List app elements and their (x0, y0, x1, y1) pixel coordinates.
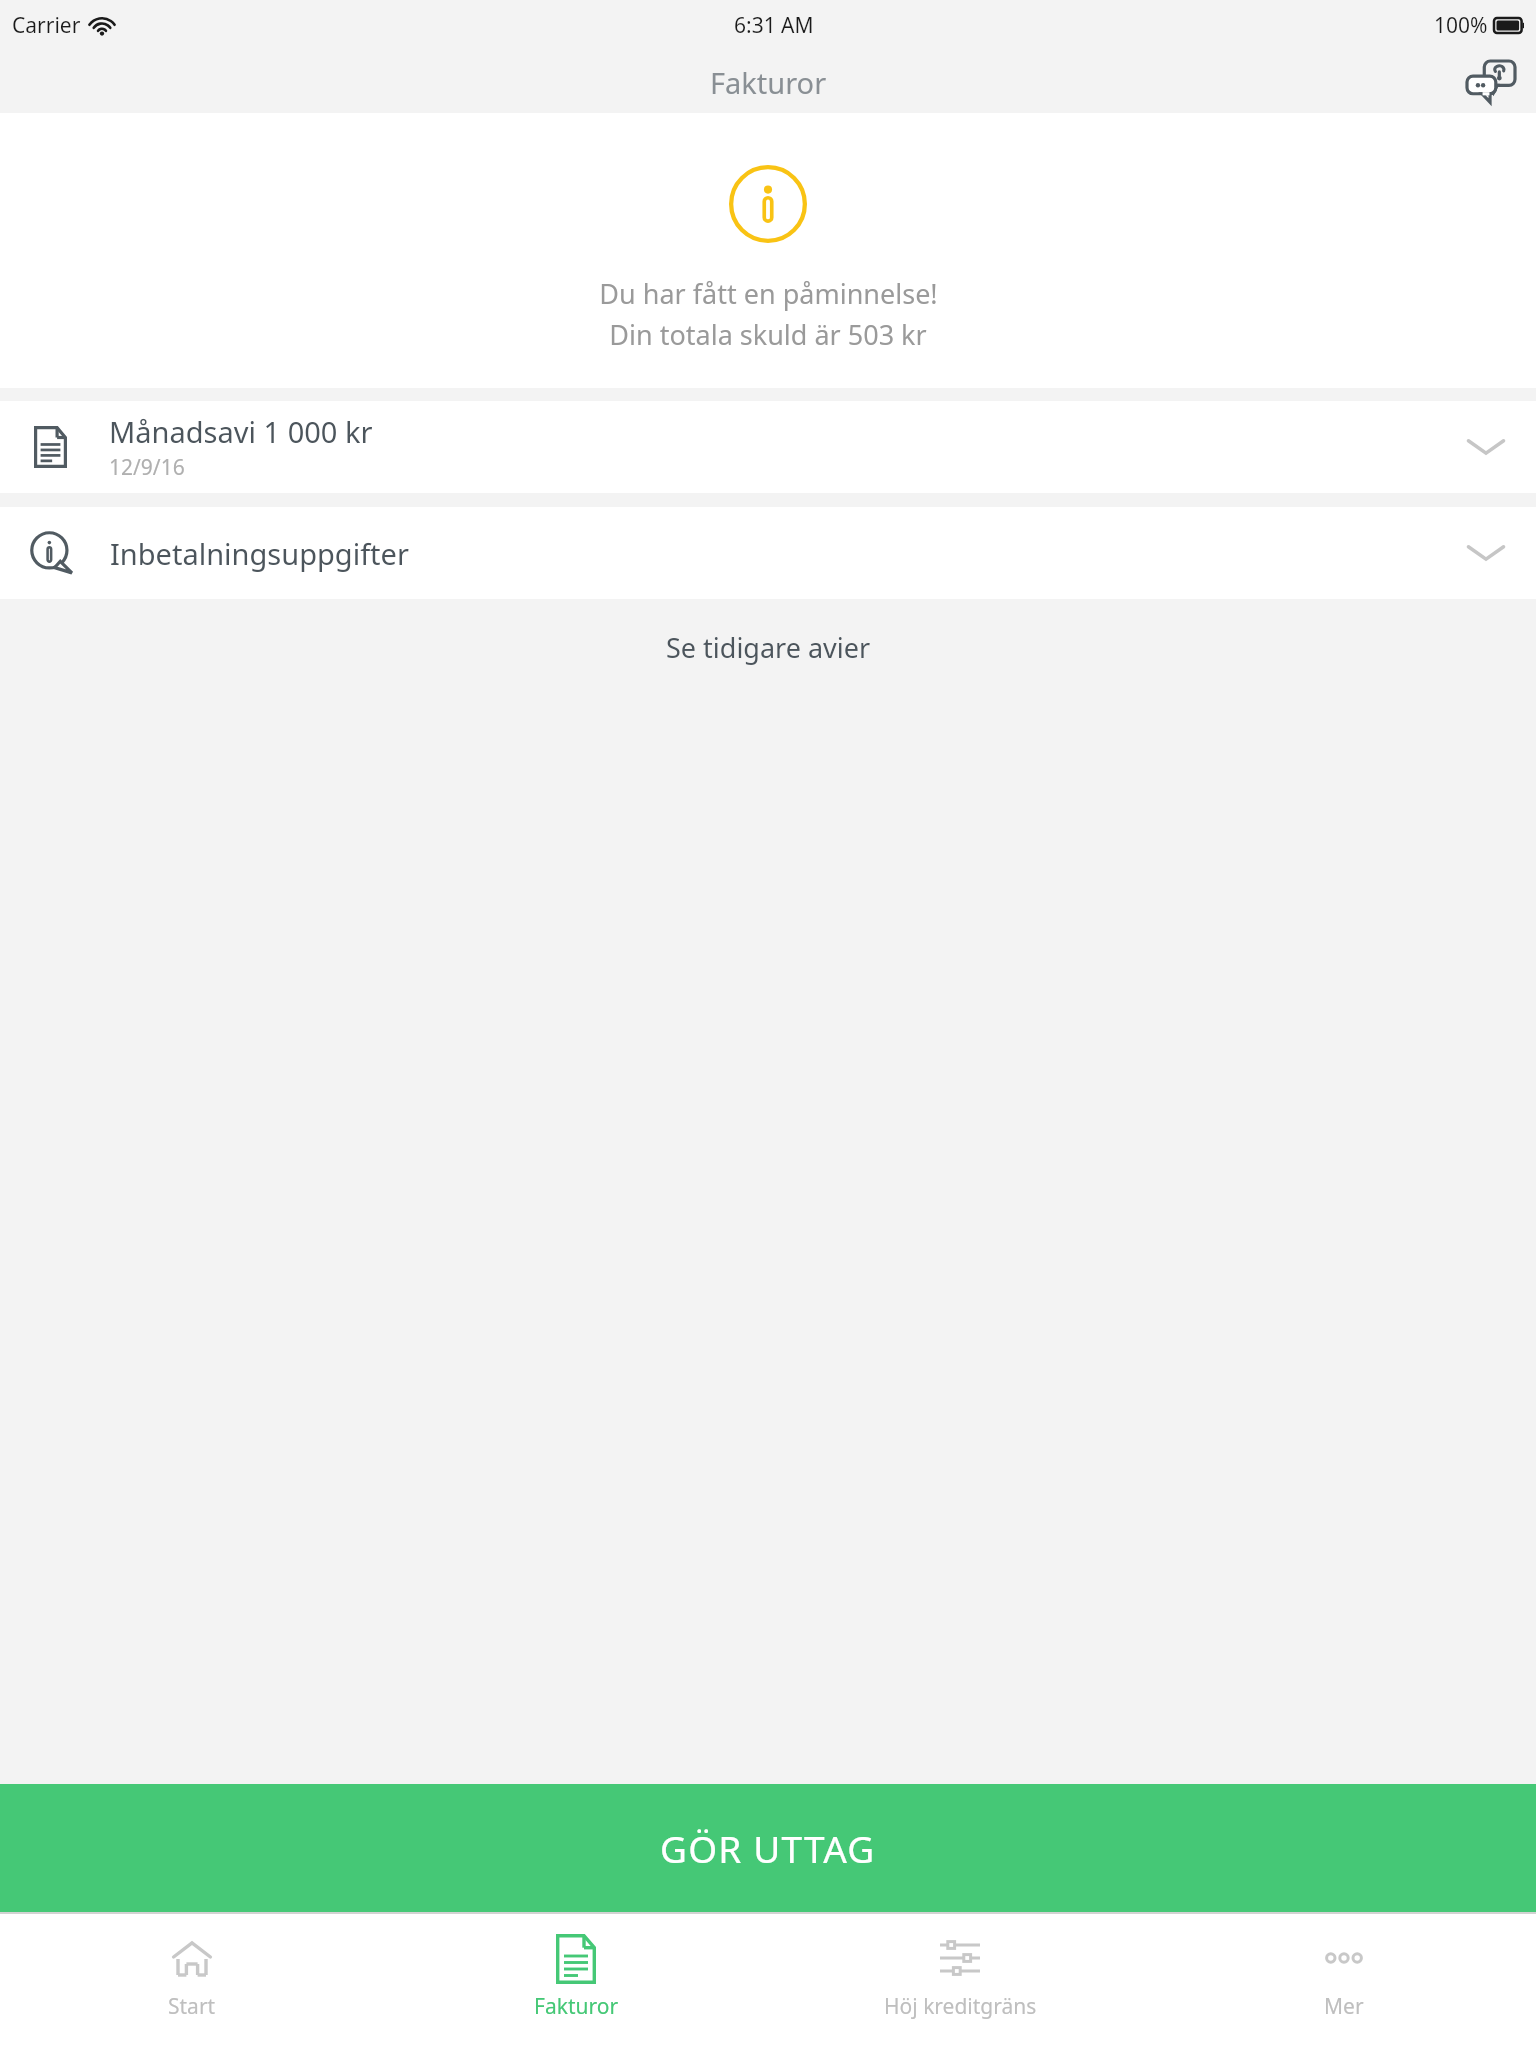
button[interactable]: Månadsavi 1 000 kr (0, 401, 1536, 493)
button[interactable]: Fakturor (384, 1914, 768, 2048)
staticText: Månadsavi 1 000 kr (109, 412, 373, 451)
staticText: 6:31 AM (734, 11, 814, 40)
button[interactable]: Help and chat (1460, 51, 1522, 113)
button[interactable]: Mer (1152, 1914, 1536, 2048)
staticText: Se tidigare avier (666, 629, 871, 666)
staticText: 12/9/16 (109, 453, 185, 482)
button[interactable]: Höj kreditgräns (768, 1914, 1152, 2048)
button[interactable]: Start (0, 1914, 384, 2048)
staticText: GÖR UTTAG (660, 1823, 876, 1873)
staticText: Du har fått en påminnelse! (599, 275, 938, 312)
button[interactable]: Se tidigare avier (0, 599, 1536, 695)
staticText: Höj kreditgräns (884, 1992, 1037, 2021)
button[interactable]: Inbetalningsuppgifter (0, 507, 1536, 599)
staticText: Mer (1324, 1992, 1364, 2021)
staticText: Fakturor (534, 1992, 619, 2021)
button[interactable]: GÖR UTTAG (0, 1784, 1536, 1912)
staticText: 100% (1434, 11, 1488, 40)
staticText: Carrier (12, 11, 81, 40)
staticText: Inbetalningsuppgifter (110, 534, 409, 573)
staticText: Fakturor (710, 63, 827, 102)
staticText: Din totala skuld är 503 kr (609, 316, 927, 353)
staticText: Start (168, 1992, 216, 2021)
